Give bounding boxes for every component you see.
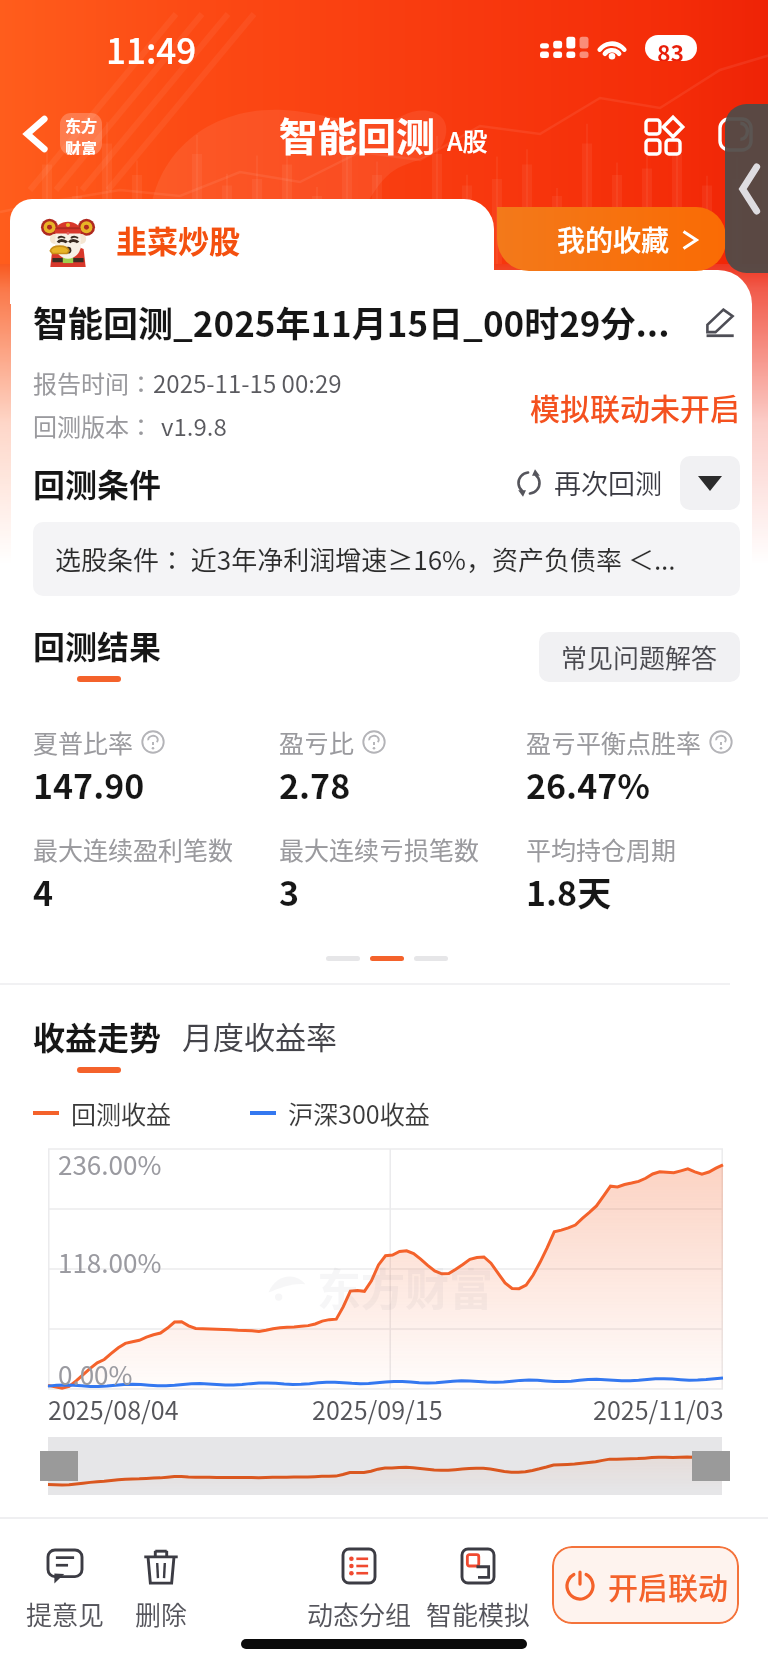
button[interactable]: 智能模拟: [420, 1547, 536, 1633]
button[interactable]: [48, 1437, 722, 1495]
button[interactable]: Menu: [708, 107, 762, 161]
staticText: 236.00%: [58, 1145, 162, 1183]
staticText: 收益走势: [33, 1013, 162, 1059]
staticText: 回测版本：: [33, 408, 153, 443]
staticText: 开启联动: [608, 1564, 728, 1607]
button[interactable]: 选股条件： 近3年净利润增速≥16%，资产负债率 ＜...: [33, 522, 740, 596]
staticText: 回测收益: [71, 1095, 172, 1131]
staticText: 回测条件: [33, 460, 162, 506]
staticText: 2.78: [279, 760, 351, 809]
button[interactable]: 常见问题解答: [539, 632, 740, 682]
staticText: 模拟联动未开启: [530, 385, 740, 428]
button[interactable]: 再次回测: [510, 455, 666, 510]
staticText: 4: [33, 867, 54, 916]
staticText: 删除: [135, 1595, 188, 1633]
staticText: 盈亏平衡点胜率: [526, 724, 702, 760]
staticText: 26.47%: [526, 760, 651, 809]
staticText: 选股条件： 近3年净利润增速≥16%，资产负债率 ＜...: [55, 540, 676, 578]
staticText: 报告时间：: [33, 365, 153, 400]
staticText: 智能模拟: [426, 1595, 531, 1633]
button[interactable]: 开启联动: [552, 1546, 739, 1624]
staticText: 智能回测_2025年11月15日_00时29分...: [33, 296, 696, 347]
staticText: 最大连续亏损笔数: [279, 831, 480, 867]
staticText: 东方: [65, 113, 98, 136]
button[interactable]: Rename: [700, 302, 740, 342]
staticText: 东方财富: [317, 1255, 493, 1319]
staticText: 动态分组: [307, 1595, 412, 1633]
staticText: 提意见: [26, 1595, 105, 1633]
staticText: 83: [657, 35, 685, 61]
staticText: 回测结果: [33, 622, 162, 668]
staticText: 常见问题解答: [561, 638, 718, 676]
button[interactable]: 删除: [103, 1547, 219, 1633]
staticText: 沪深300收益: [288, 1095, 430, 1131]
button[interactable]: 提意见: [7, 1547, 123, 1633]
button[interactable]: Apps: [634, 107, 688, 161]
staticText: 1.8天: [526, 867, 612, 916]
button[interactable]: Open panel: [725, 104, 768, 273]
staticText: 再次回测: [554, 463, 662, 502]
staticText: 118.00%: [58, 1243, 162, 1281]
staticText: 11:49: [106, 23, 197, 74]
staticText: 我的收藏: [557, 219, 670, 260]
button[interactable]: Expand: [680, 456, 740, 510]
button[interactable]: 东方: [60, 113, 102, 155]
staticText: 2025/11/03: [593, 1391, 724, 1427]
staticText: 月度收益率: [182, 1013, 337, 1058]
button[interactable]: Back: [12, 104, 60, 164]
staticText: 3: [279, 867, 300, 916]
button[interactable]: 韭菜炒股: [10, 199, 494, 304]
button[interactable]: 月度收益率: [182, 1013, 337, 1058]
staticText: 2025/08/04: [48, 1391, 179, 1427]
staticText: 0.00%: [58, 1355, 133, 1391]
button[interactable]: 动态分组: [301, 1547, 417, 1633]
staticText: 平均持仓周期: [526, 831, 677, 867]
button[interactable]: 我的收藏: [497, 207, 726, 271]
staticText: 夏普比率: [33, 724, 134, 760]
staticText: 财富: [65, 136, 98, 155]
staticText: 最大连续盈利笔数: [33, 831, 234, 867]
staticText: 盈亏比: [279, 724, 355, 760]
staticText: v1.9.8: [161, 408, 227, 443]
staticText: 147.90: [33, 760, 145, 809]
staticText: A股: [447, 122, 488, 158]
staticText: 智能回测: [279, 106, 436, 162]
staticText: 2025-11-15 00:29: [153, 365, 342, 400]
staticText: 韭菜炒股: [116, 217, 240, 262]
staticText: 2025/09/15: [312, 1391, 443, 1427]
